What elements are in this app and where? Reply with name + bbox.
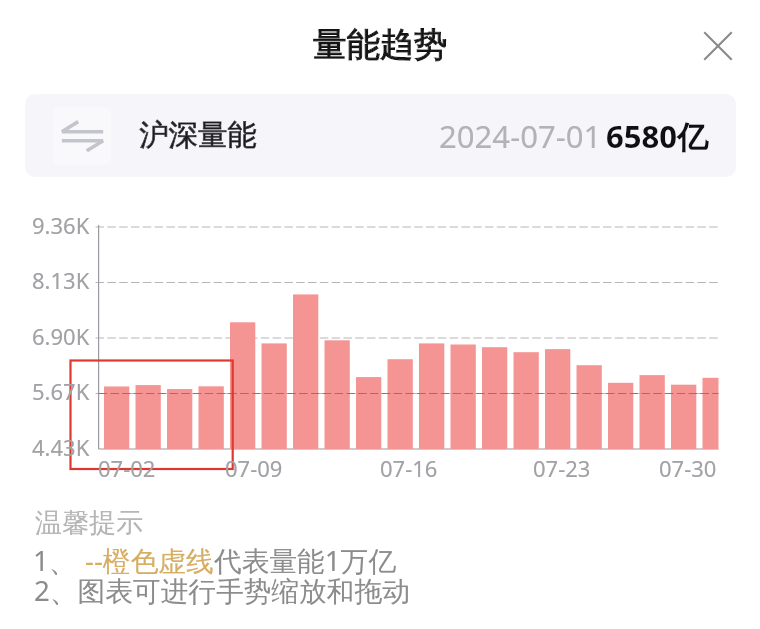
staticText: 07-02 bbox=[98, 453, 156, 483]
staticText: --橙色虚线 bbox=[85, 541, 214, 579]
staticText: 6580亿 bbox=[606, 115, 708, 157]
staticText: 2、图表可进行手势缩放和拖动 bbox=[34, 571, 410, 609]
button[interactable]: 沪深量能 bbox=[25, 94, 736, 177]
staticText: 沪深量能 bbox=[139, 117, 257, 154]
staticText: 4.43K bbox=[32, 432, 90, 462]
staticText: 沪深量能 bbox=[139, 117, 257, 154]
staticText: 6.90K bbox=[32, 321, 90, 351]
staticText: 5.67K bbox=[32, 376, 90, 406]
staticText: 量能趋势 bbox=[313, 24, 447, 66]
staticText: 07-23 bbox=[533, 453, 591, 483]
button[interactable]: Volume trend chart bbox=[25, 205, 736, 480]
staticText: 8.13K bbox=[32, 265, 90, 295]
staticText: 温馨提示 bbox=[35, 506, 143, 540]
staticText: 07-30 bbox=[659, 453, 717, 483]
staticText: 2024-07-01 bbox=[439, 115, 602, 157]
button[interactable]: Close bbox=[694, 22, 742, 70]
staticText: 量能趋势 bbox=[313, 24, 447, 66]
staticText: 9.36K bbox=[32, 210, 90, 240]
staticText: 07-16 bbox=[380, 453, 438, 483]
staticText: 1、 bbox=[33, 541, 77, 579]
staticText: 07-09 bbox=[225, 453, 283, 483]
staticText: 代表量能1万亿 bbox=[214, 541, 396, 579]
